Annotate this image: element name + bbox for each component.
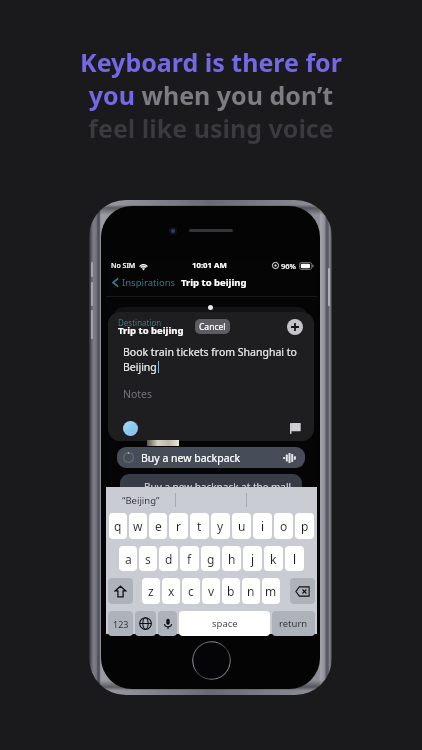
- button[interactable]: p: [295, 513, 314, 539]
- staticText: t: [197, 518, 202, 534]
- staticText: Buy a new backpack: [141, 451, 241, 465]
- staticText: n: [247, 583, 255, 599]
- staticText: Buy a new backpack at the mall: [144, 480, 292, 494]
- button[interactable]: Numbers: [108, 611, 133, 636]
- button[interactable]: i: [253, 513, 272, 539]
- staticText: Keyboard is there for you when you don’t…: [80, 45, 342, 145]
- button[interactable]: u: [232, 513, 251, 539]
- staticText: 123: [113, 618, 129, 630]
- button[interactable]: Flag: [288, 420, 306, 438]
- button[interactable]: q: [109, 513, 127, 539]
- staticText: v: [208, 583, 215, 599]
- staticText: Trip to beijing: [181, 276, 247, 289]
- button[interactable]: “Beijing”: [106, 487, 175, 513]
- button[interactable]: Shift: [108, 578, 133, 604]
- staticText: b: [227, 583, 235, 599]
- staticText: 10:01 AM: [192, 260, 227, 271]
- staticText: u: [238, 518, 246, 534]
- button[interactable]: Home: [192, 641, 231, 680]
- button[interactable]: j: [243, 546, 262, 571]
- button[interactable]: Add: [287, 319, 303, 335]
- staticText: space: [212, 617, 238, 630]
- button[interactable]: d: [159, 546, 178, 571]
- staticText: z: [148, 583, 154, 599]
- button[interactable]: m: [262, 578, 280, 604]
- button[interactable]: l: [285, 546, 304, 571]
- staticText: No SIM: [111, 261, 136, 271]
- button[interactable]: Buy a new backpack at the mall: [120, 474, 302, 496]
- staticText: d: [165, 551, 173, 567]
- button[interactable]: t: [190, 513, 209, 539]
- button[interactable]: v: [202, 578, 220, 604]
- staticText: k: [270, 551, 277, 567]
- staticText: w: [133, 518, 143, 534]
- staticText: f: [187, 551, 192, 567]
- staticText: r: [176, 518, 181, 534]
- staticText: o: [280, 518, 288, 534]
- staticText: “Beijing”: [122, 494, 160, 507]
- button[interactable]: Siri: [123, 421, 138, 436]
- button[interactable]: e: [149, 513, 167, 539]
- button[interactable]: return: [272, 611, 315, 636]
- button[interactable]: b: [222, 578, 240, 604]
- button[interactable]: space: [179, 611, 270, 636]
- staticText: a: [125, 551, 132, 567]
- button[interactable]: Cancel: [195, 319, 230, 334]
- staticText: g: [207, 551, 215, 567]
- button[interactable]: s: [139, 546, 157, 571]
- button[interactable]: Inspirations: [111, 275, 176, 290]
- staticText: return: [279, 617, 308, 630]
- button[interactable]: a: [119, 546, 137, 571]
- button[interactable]: Emoji: [135, 611, 156, 636]
- staticText: Trip to beijing: [118, 324, 184, 337]
- staticText: c: [188, 583, 194, 599]
- button[interactable]: y: [211, 513, 230, 539]
- staticText: p: [301, 518, 309, 534]
- staticText: x: [168, 583, 175, 599]
- button[interactable]: Buy a new backpack: [117, 447, 305, 468]
- button[interactable]: x: [162, 578, 180, 604]
- button[interactable]: k: [264, 546, 283, 571]
- staticText: Book train tickets from Shanghai to Beij…: [123, 345, 305, 374]
- button[interactable]: o: [274, 513, 293, 539]
- staticText: Cancel: [199, 321, 226, 333]
- staticText: e: [155, 518, 162, 534]
- staticText: Inspirations: [122, 276, 176, 289]
- button[interactable]: r: [169, 513, 188, 539]
- button[interactable]: Dictate: [158, 611, 177, 636]
- staticText: q: [114, 518, 122, 534]
- staticText: Destination: [118, 317, 162, 328]
- button[interactable]: g: [201, 546, 220, 571]
- button[interactable]: Backspace: [290, 578, 315, 604]
- staticText: s: [145, 551, 151, 567]
- staticText: Notes: [123, 387, 153, 401]
- button[interactable]: z: [142, 578, 160, 604]
- button[interactable]: h: [222, 546, 241, 571]
- button[interactable]: c: [182, 578, 200, 604]
- staticText: h: [228, 551, 236, 567]
- button[interactable]: n: [242, 578, 260, 604]
- button[interactable]: f: [180, 546, 199, 571]
- staticText: l: [293, 551, 297, 567]
- staticText: i: [261, 518, 265, 534]
- staticText: j: [251, 551, 255, 567]
- button[interactable]: w: [129, 513, 147, 539]
- staticText: m: [265, 583, 277, 599]
- staticText: y: [217, 518, 224, 534]
- staticText: 96%: [281, 261, 296, 271]
